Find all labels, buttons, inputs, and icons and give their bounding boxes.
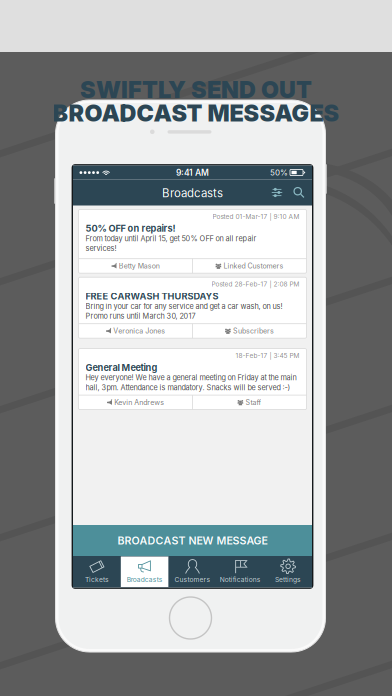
button[interactable]: Posted 28-Feb-17 | 2:08 PM: [78, 277, 306, 338]
staticText: 50% OFF on repairs!: [85, 223, 175, 234]
staticText: Subscribers: [233, 327, 274, 335]
staticText: Tickets: [85, 575, 109, 584]
button[interactable]: 18-Feb-17 | 3:45 PM: [78, 349, 306, 410]
button[interactable]: Search: [288, 179, 310, 205]
staticText: Posted 28-Feb-17 | 2:08 PM: [211, 280, 299, 288]
staticText: services!: [85, 244, 116, 253]
staticText: Customers: [174, 575, 210, 584]
button[interactable]: Customers: [169, 556, 216, 587]
staticText: Notifications: [220, 575, 261, 584]
staticText: Linked Customers: [223, 262, 283, 270]
button[interactable]: Settings: [264, 556, 312, 587]
staticText: Bring in your car for any service and ge…: [85, 302, 282, 311]
button[interactable]: Broadcasts: [121, 556, 169, 587]
staticText: 50%: [270, 168, 288, 178]
staticText: Betty Mason: [119, 262, 160, 270]
button[interactable]: Notifications: [216, 556, 264, 587]
staticText: 18-Feb-17 | 3:45 PM: [235, 352, 299, 359]
staticText: Hey everyone! We have a general meeting …: [85, 373, 296, 382]
staticText: 9:41 AM: [176, 167, 209, 178]
staticText: Promo runs until March 30, 2017: [85, 312, 195, 321]
staticText: BROADCAST NEW MESSAGE: [117, 534, 267, 547]
staticText: hall, 3pm. Attendance is mandatory. Snac…: [85, 383, 290, 392]
staticText: Settings: [275, 575, 301, 584]
button[interactable]: Filter: [266, 179, 288, 205]
staticText: Kevin Andrews: [114, 398, 164, 407]
staticText: Posted 01-Mar-17 | 9:10 AM: [212, 212, 299, 220]
staticText: SWIFTLY SEND OUT: [80, 75, 312, 104]
staticText: Veronica Jones: [113, 327, 165, 335]
staticText: From today until April 15, get 50% OFF o…: [85, 234, 256, 243]
staticText: General Meeting: [85, 362, 157, 373]
staticText: Staff: [245, 398, 261, 407]
staticText: Broadcasts: [127, 575, 163, 584]
button[interactable]: Posted 01-Mar-17 | 9:10 AM: [78, 209, 306, 273]
button[interactable]: BROADCAST NEW MESSAGE: [73, 525, 312, 556]
staticText: FREE CARWASH THURSDAYS: [85, 291, 218, 302]
staticText: BROADCAST MESSAGES: [52, 99, 339, 127]
staticText: Broadcasts: [162, 186, 223, 200]
button[interactable]: Tickets: [73, 556, 121, 587]
